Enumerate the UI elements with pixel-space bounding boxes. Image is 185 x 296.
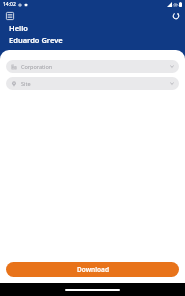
staticText: 14:02 [3,1,16,8]
staticText: Download [77,265,109,274]
button[interactable]: Refresh [170,10,181,21]
staticText: Eduardo Greve [9,35,63,45]
button[interactable]: Open navigation menu [4,10,15,21]
button[interactable]: Download [6,262,179,277]
button[interactable]: Site [6,77,179,90]
staticText: Corporation [21,63,170,70]
staticText: Site [21,80,170,87]
staticText: Hello [9,23,28,33]
button[interactable]: Corporation [6,60,179,73]
